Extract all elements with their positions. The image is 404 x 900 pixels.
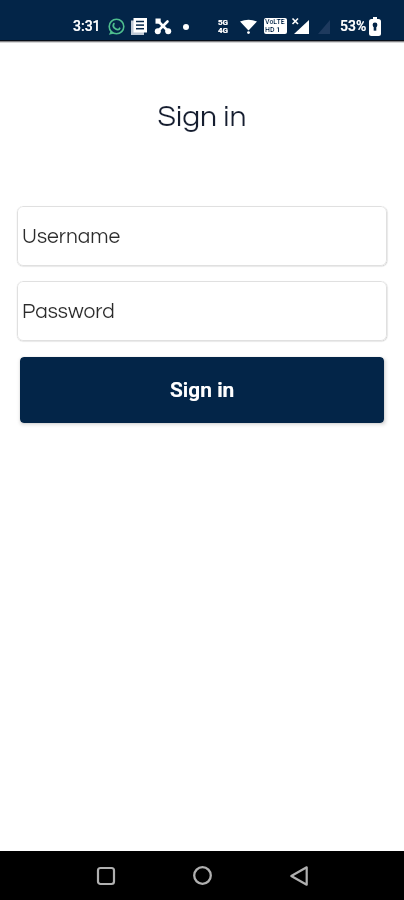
- staticText: 5G: [218, 18, 229, 27]
- button[interactable]: Home: [178, 851, 226, 900]
- button[interactable]: Sign in: [20, 357, 384, 423]
- button[interactable]: Back: [275, 851, 323, 900]
- staticText: Username: [22, 226, 121, 248]
- staticText: 4G: [218, 26, 229, 35]
- staticText: VoLTE: [265, 18, 285, 26]
- button[interactable]: Username: [17, 206, 387, 266]
- staticText: 53%: [340, 18, 367, 34]
- staticText: Sign in: [170, 378, 235, 403]
- staticText: 3:31: [73, 18, 101, 34]
- staticText: Sign in: [0, 101, 404, 132]
- button[interactable]: Recent apps: [82, 851, 130, 900]
- staticText: Password: [22, 301, 115, 323]
- button[interactable]: Password: [17, 281, 387, 341]
- staticText: HD 1: [265, 26, 281, 34]
